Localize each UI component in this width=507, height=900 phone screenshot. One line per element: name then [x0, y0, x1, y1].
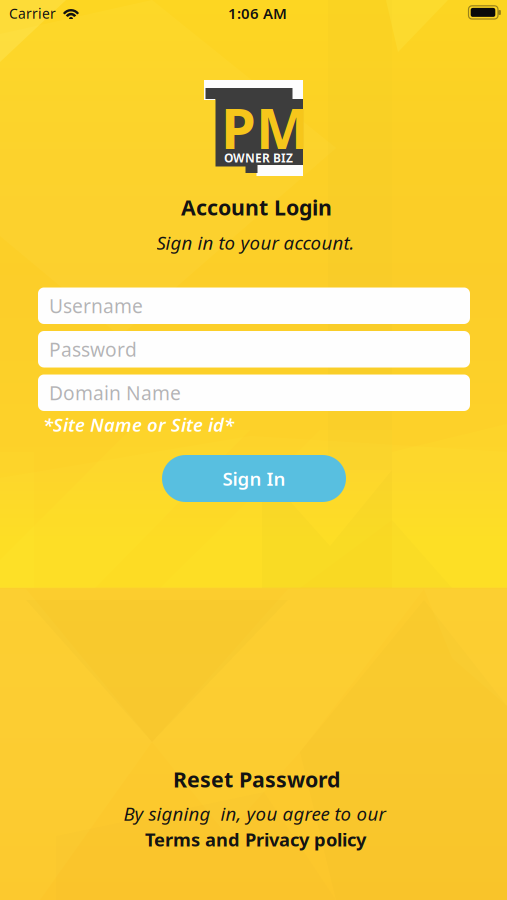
staticText: Password	[49, 336, 137, 362]
button[interactable]: Password	[38, 331, 470, 367]
staticText: OWNER BIZ	[224, 150, 293, 166]
button[interactable]: Terms and Privacy policy	[2, 827, 507, 852]
staticText: 1:06 AM	[228, 3, 287, 23]
staticText: *Site Name or Site id*	[43, 412, 234, 437]
staticText: Sign in to your account.	[156, 230, 354, 255]
button[interactable]: Username	[38, 287, 470, 324]
button[interactable]: Reset Password	[3, 765, 507, 793]
staticText: Terms and Privacy policy	[145, 827, 366, 852]
staticText: Username	[49, 293, 143, 319]
staticText: Domain Name	[49, 380, 181, 406]
staticText: PM	[221, 90, 309, 164]
staticText: Sign In	[222, 466, 285, 491]
staticText: Carrier	[9, 4, 56, 23]
staticText: By signing in, you agree to our	[123, 801, 385, 826]
staticText: Account Login	[181, 193, 332, 221]
button[interactable]: Sign In	[162, 455, 346, 502]
button[interactable]: Domain Name	[38, 374, 470, 411]
staticText: Reset Password	[173, 765, 340, 793]
